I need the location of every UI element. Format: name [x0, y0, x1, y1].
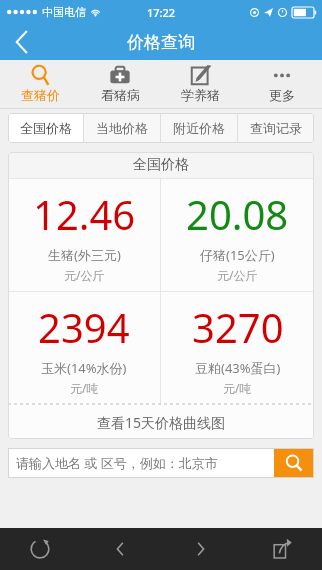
- staticText: 请输入地名 或 区号，例如：北京市: [16, 454, 218, 472]
- staticText: 元/公斤: [64, 267, 105, 283]
- staticText: 查猪价: [21, 87, 60, 103]
- staticText: 当地价格: [96, 120, 148, 136]
- staticText: 玉米(14%水份): [41, 359, 127, 377]
- button[interactable]: 更多: [241, 60, 322, 108]
- button[interactable]: 看猪病: [80, 60, 160, 108]
- button[interactable]: 查询记录: [238, 113, 314, 143]
- button[interactable]: 附近价格: [161, 113, 237, 143]
- staticText: 20.08: [186, 187, 289, 241]
- staticText: 17:22: [147, 5, 176, 20]
- staticText: 全国价格: [133, 156, 189, 174]
- button[interactable]: 学养猪: [160, 60, 241, 108]
- staticText: 中国电信: [42, 5, 86, 19]
- button[interactable]: 当地价格: [84, 113, 160, 143]
- staticText: 豆粕(43%蛋白): [195, 359, 281, 377]
- button[interactable]: 查看15天价格曲线图: [8, 405, 314, 439]
- button[interactable]: Share: [241, 528, 322, 570]
- staticText: 价格查询: [127, 32, 195, 53]
- button[interactable]: 全国价格: [8, 113, 83, 143]
- staticText: 2394: [38, 300, 130, 354]
- staticText: 附近价格: [173, 120, 225, 136]
- staticText: 查看15天价格曲线图: [97, 413, 226, 432]
- staticText: 12.46: [33, 187, 136, 241]
- button[interactable]: Back: [0, 24, 44, 60]
- button[interactable]: 2394: [8, 292, 160, 404]
- button[interactable]: 12.46: [8, 179, 160, 291]
- button[interactable]: 3270: [161, 292, 314, 404]
- staticText: 更多: [269, 87, 295, 103]
- staticText: 生猪(外三元): [48, 246, 121, 264]
- button[interactable]: 查猪价: [0, 60, 80, 108]
- staticText: 看猪病: [101, 87, 140, 103]
- staticText: 元/吨: [223, 380, 252, 396]
- button[interactable]: Refresh: [0, 528, 80, 570]
- button[interactable]: 请输入地名 或 区号，例如：北京市: [16, 448, 274, 478]
- staticText: 全国价格: [20, 120, 72, 136]
- button[interactable]: Forward: [160, 528, 241, 570]
- button[interactable]: Search: [274, 448, 314, 478]
- staticText: 仔猪(15公斤): [200, 246, 275, 264]
- staticText: 3270: [192, 300, 284, 354]
- button[interactable]: Back: [80, 528, 160, 570]
- button[interactable]: 20.08: [161, 179, 314, 291]
- staticText: 学养猪: [181, 87, 220, 103]
- staticText: 查询记录: [250, 120, 302, 136]
- staticText: 元/吨: [70, 380, 99, 396]
- staticText: 元/公斤: [217, 267, 258, 283]
